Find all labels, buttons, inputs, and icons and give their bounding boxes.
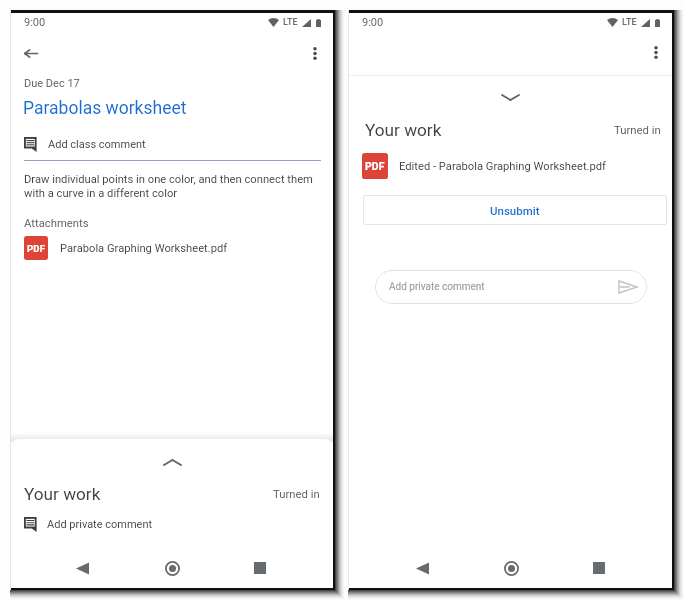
staticText: Due Dec 17 [24,77,80,90]
staticText: Add private comment [47,518,153,531]
staticText: Add class comment [48,138,146,151]
button[interactable]: Back [20,42,42,64]
button[interactable]: Add class comment [11,134,333,154]
staticText: Edited - Parabola Graphing Worksheet.pdf [399,160,606,173]
button[interactable]: Home [498,555,524,581]
button[interactable]: PDF [11,234,333,262]
staticText: LTE [622,17,637,28]
button[interactable]: Recents [586,555,612,581]
staticText: LTE [283,17,298,28]
staticText: Attachments [24,217,89,230]
staticText: Turned in [273,488,320,501]
button[interactable]: PDF [349,151,672,181]
button[interactable]: Add private comment [375,270,647,304]
staticText: PDF [27,243,45,254]
staticText: Parabola Graphing Worksheet.pdf [60,242,228,255]
staticText: 9:00 [24,16,46,29]
button[interactable]: Add private comment [11,513,333,535]
staticText: Draw individual points in one color, and… [24,173,314,200]
staticText: Parabolas worksheet [23,98,187,119]
staticText: PDF [365,160,385,172]
staticText: Unsubmit [490,204,540,217]
button[interactable]: Recents [247,555,273,581]
staticText: Turned in [614,124,661,137]
staticText: Your work [365,120,442,140]
staticText: Add private comment [389,281,485,293]
button[interactable]: Back [69,555,95,581]
staticText: 9:00 [362,16,384,29]
staticText: Your work [24,484,101,504]
button[interactable]: Unsubmit [363,195,667,225]
button[interactable]: Back [409,555,435,581]
button[interactable]: More options [645,41,667,63]
button[interactable]: Home [159,555,185,581]
button[interactable]: More options [304,42,326,64]
